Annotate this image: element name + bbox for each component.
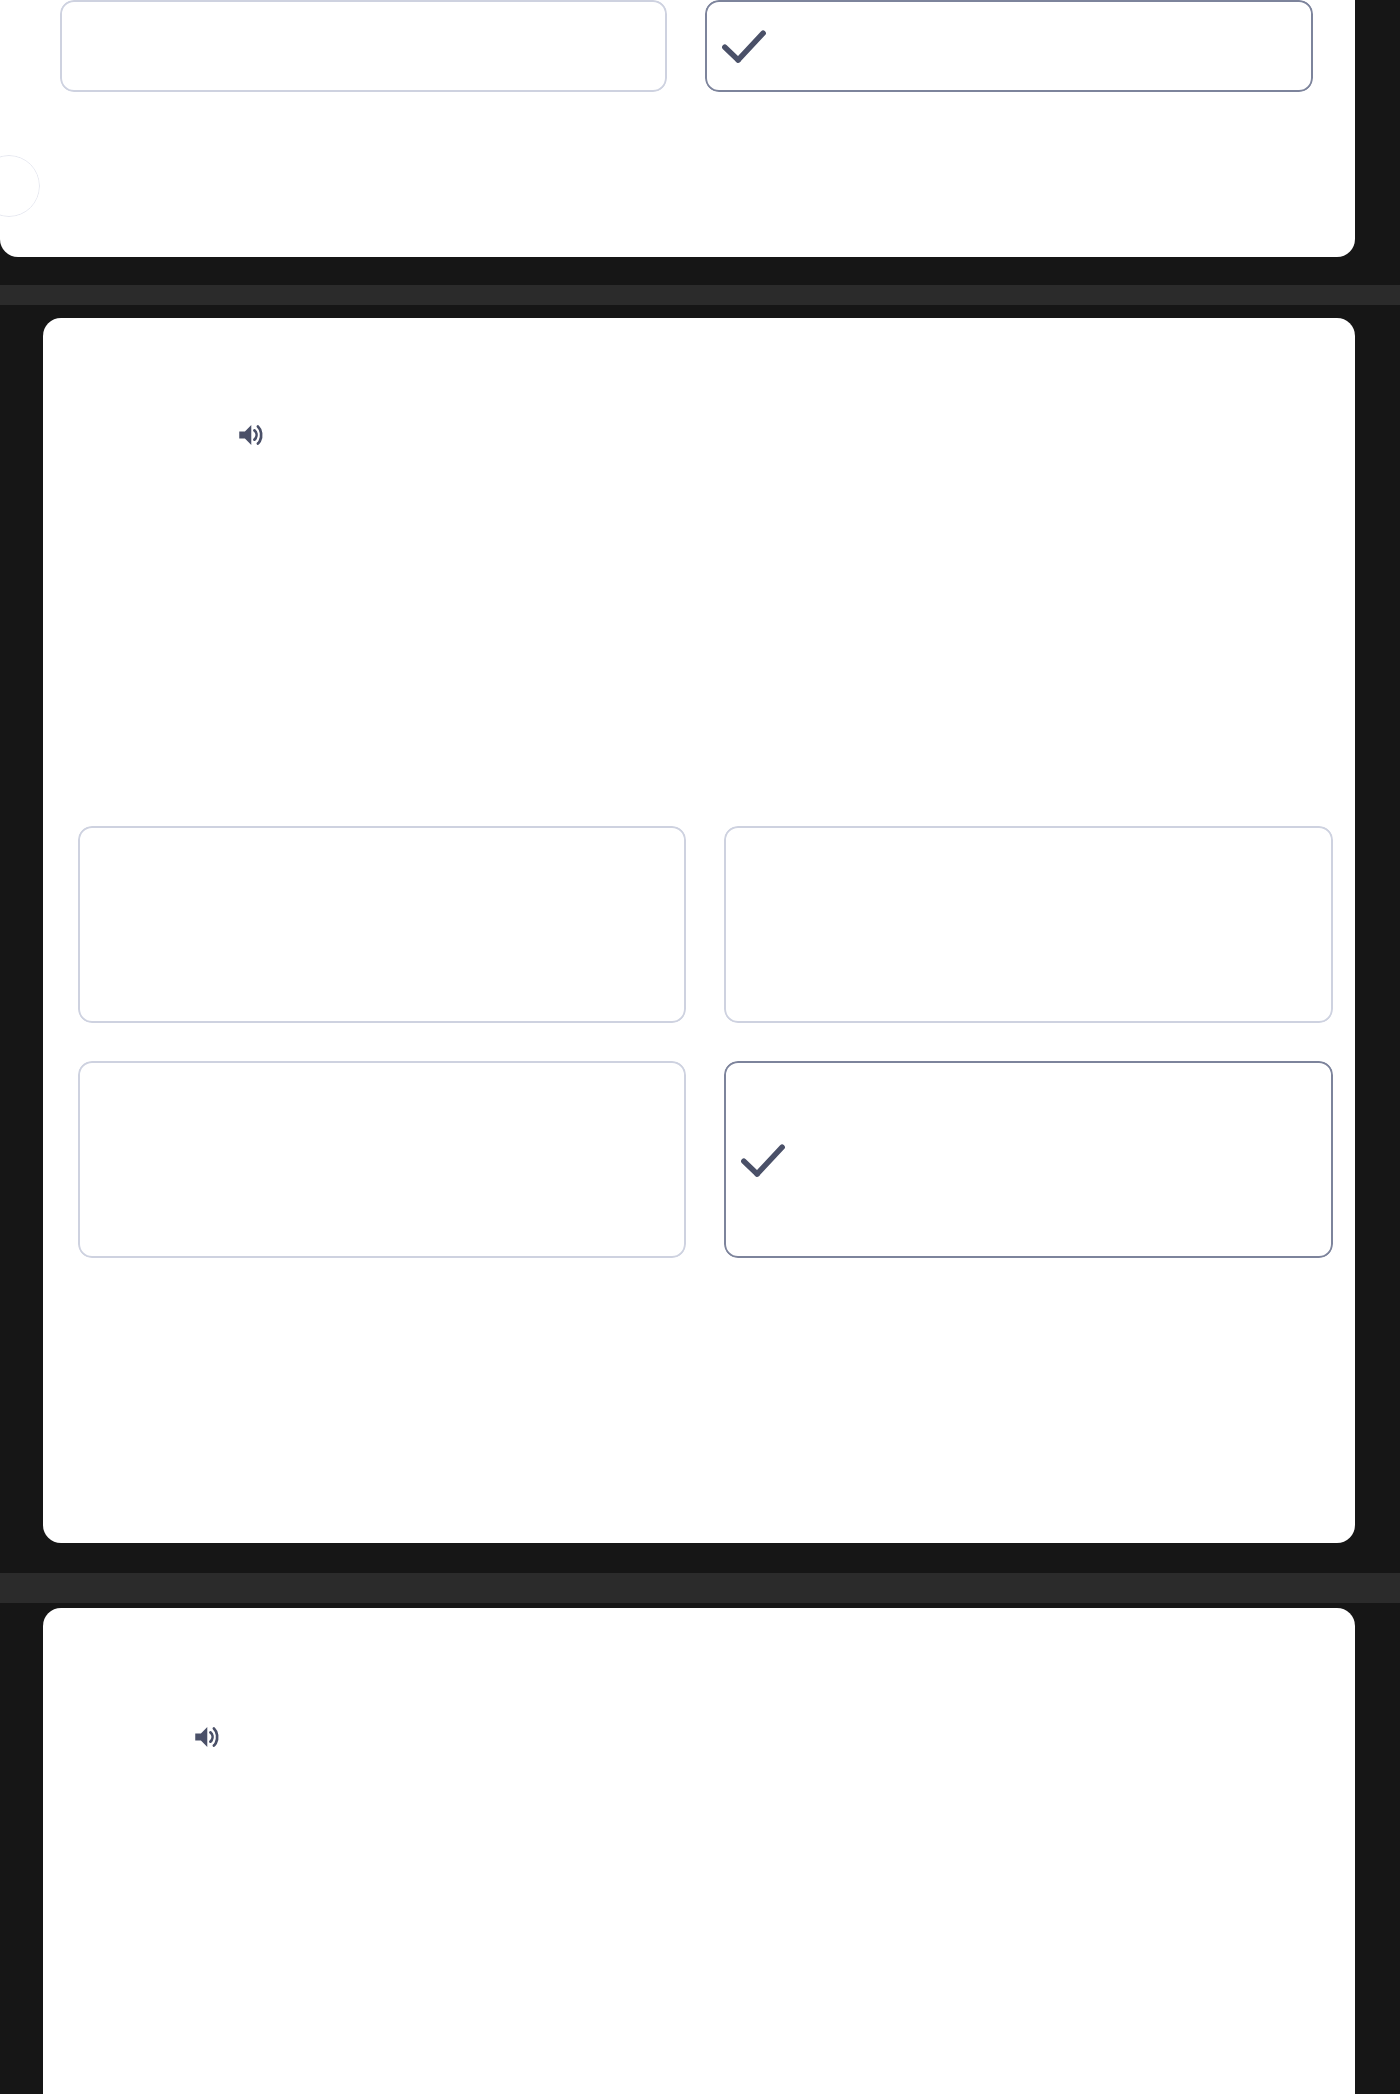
button[interactable]: Play sound (43, 1608, 1355, 2094)
button[interactable] (724, 1061, 1333, 1258)
button[interactable]: Play sound (43, 318, 1355, 1543)
button[interactable] (60, 0, 667, 92)
button[interactable] (78, 1061, 686, 1258)
button[interactable] (705, 0, 1313, 92)
button[interactable] (724, 826, 1333, 1023)
button[interactable]: Play (0, 155, 40, 217)
button[interactable] (78, 826, 686, 1023)
button[interactable]: Play (0, 0, 1355, 257)
other: Play sound (191, 1720, 225, 1754)
other: Play sound (235, 418, 269, 452)
